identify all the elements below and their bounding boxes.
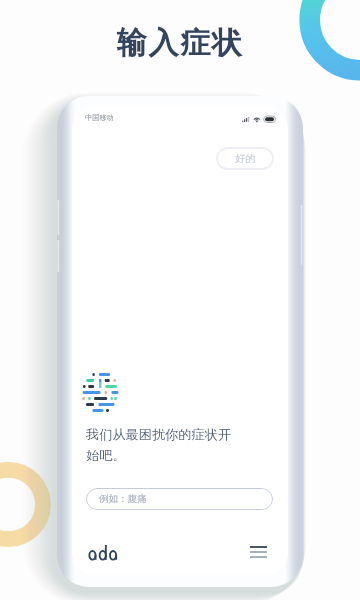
button[interactable]: 例如：腹痛 (86, 488, 273, 510)
button[interactable] (88, 544, 118, 562)
button[interactable]: Menu (247, 543, 269, 561)
staticText: 中国移动 (85, 113, 114, 122)
staticText: 例如：腹痛 (99, 493, 147, 505)
staticText: 输入症状 (117, 24, 244, 62)
staticText: 我们从最困扰你的症状开始吧。 (86, 426, 237, 464)
button[interactable]: 好的 (216, 147, 274, 170)
staticText: 好的 (235, 152, 255, 165)
